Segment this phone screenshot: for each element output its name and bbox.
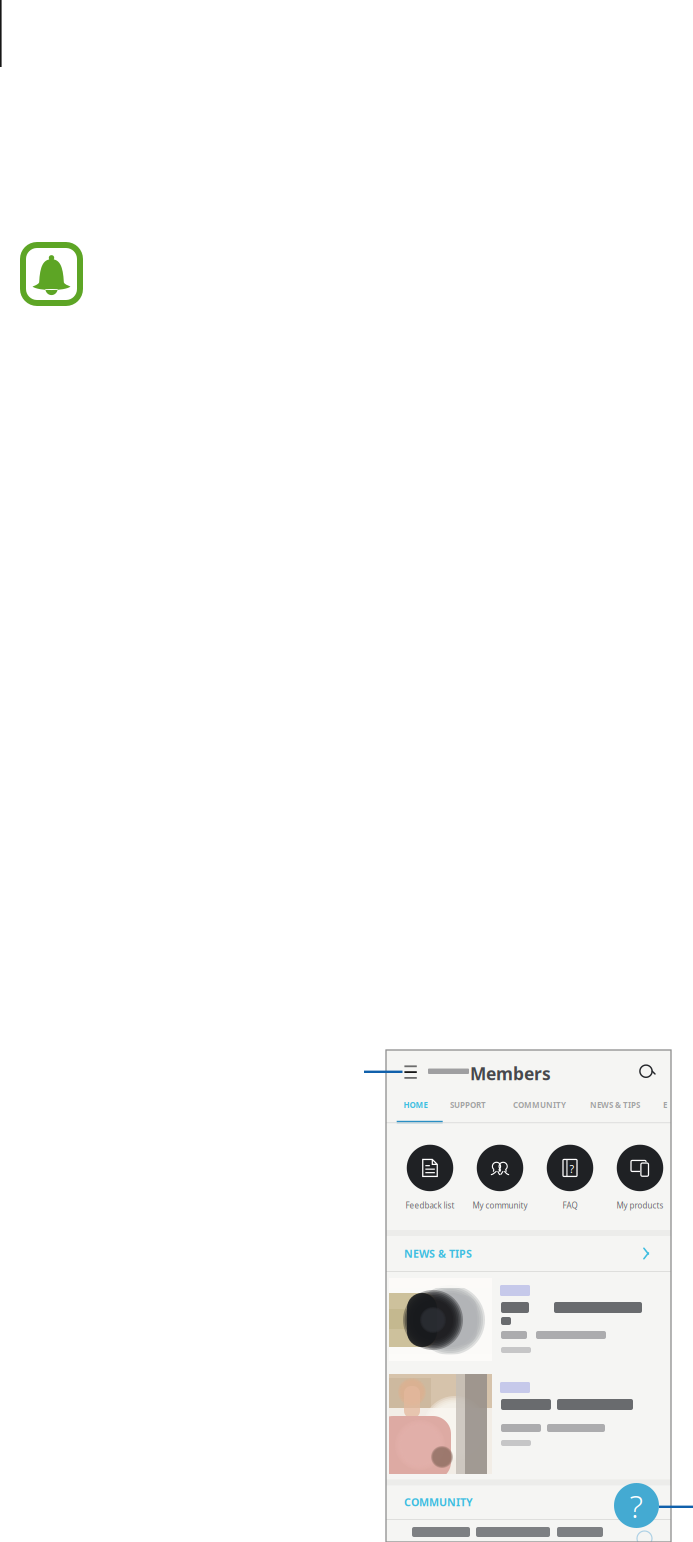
staticText: Feedback list	[405, 1200, 454, 1211]
staticText: My community	[472, 1200, 527, 1211]
button[interactable]: COMMUNITY	[507, 1092, 572, 1117]
button[interactable]: News article	[388, 1278, 669, 1372]
button[interactable]: Search	[634, 1060, 660, 1086]
staticText: Members	[470, 1062, 551, 1085]
staticText: SUPPORT	[450, 1099, 486, 1110]
button[interactable]: My community	[465, 1145, 535, 1211]
button[interactable]: E	[657, 1092, 673, 1117]
button[interactable]: COMMUNITY	[386, 1484, 671, 1519]
button[interactable]: FAQ	[535, 1145, 605, 1211]
button[interactable]: SUPPORT	[444, 1092, 492, 1117]
button[interactable]: HOME	[397, 1092, 433, 1117]
staticText: ?	[569, 1162, 574, 1176]
staticText: NEWS & TIPS	[404, 1246, 472, 1261]
staticText: COMMUNITY	[404, 1495, 473, 1509]
button[interactable]: NEWS & TIPS	[584, 1092, 646, 1117]
staticText: E	[663, 1099, 667, 1110]
button[interactable]: My products	[605, 1145, 675, 1211]
staticText: My products	[616, 1200, 663, 1211]
staticText: NEWS & TIPS	[590, 1099, 640, 1110]
button[interactable]: Feedback list	[395, 1145, 465, 1211]
button[interactable]: Help	[614, 1483, 659, 1528]
button[interactable]: Open menu	[399, 1059, 423, 1085]
staticText: ?	[629, 1484, 643, 1527]
button[interactable]: News article	[388, 1374, 669, 1474]
staticText: COMMUNITY	[513, 1099, 566, 1110]
button[interactable]: NEWS & TIPS	[386, 1236, 671, 1271]
staticText: HOME	[403, 1099, 427, 1110]
staticText: FAQ	[562, 1200, 577, 1211]
